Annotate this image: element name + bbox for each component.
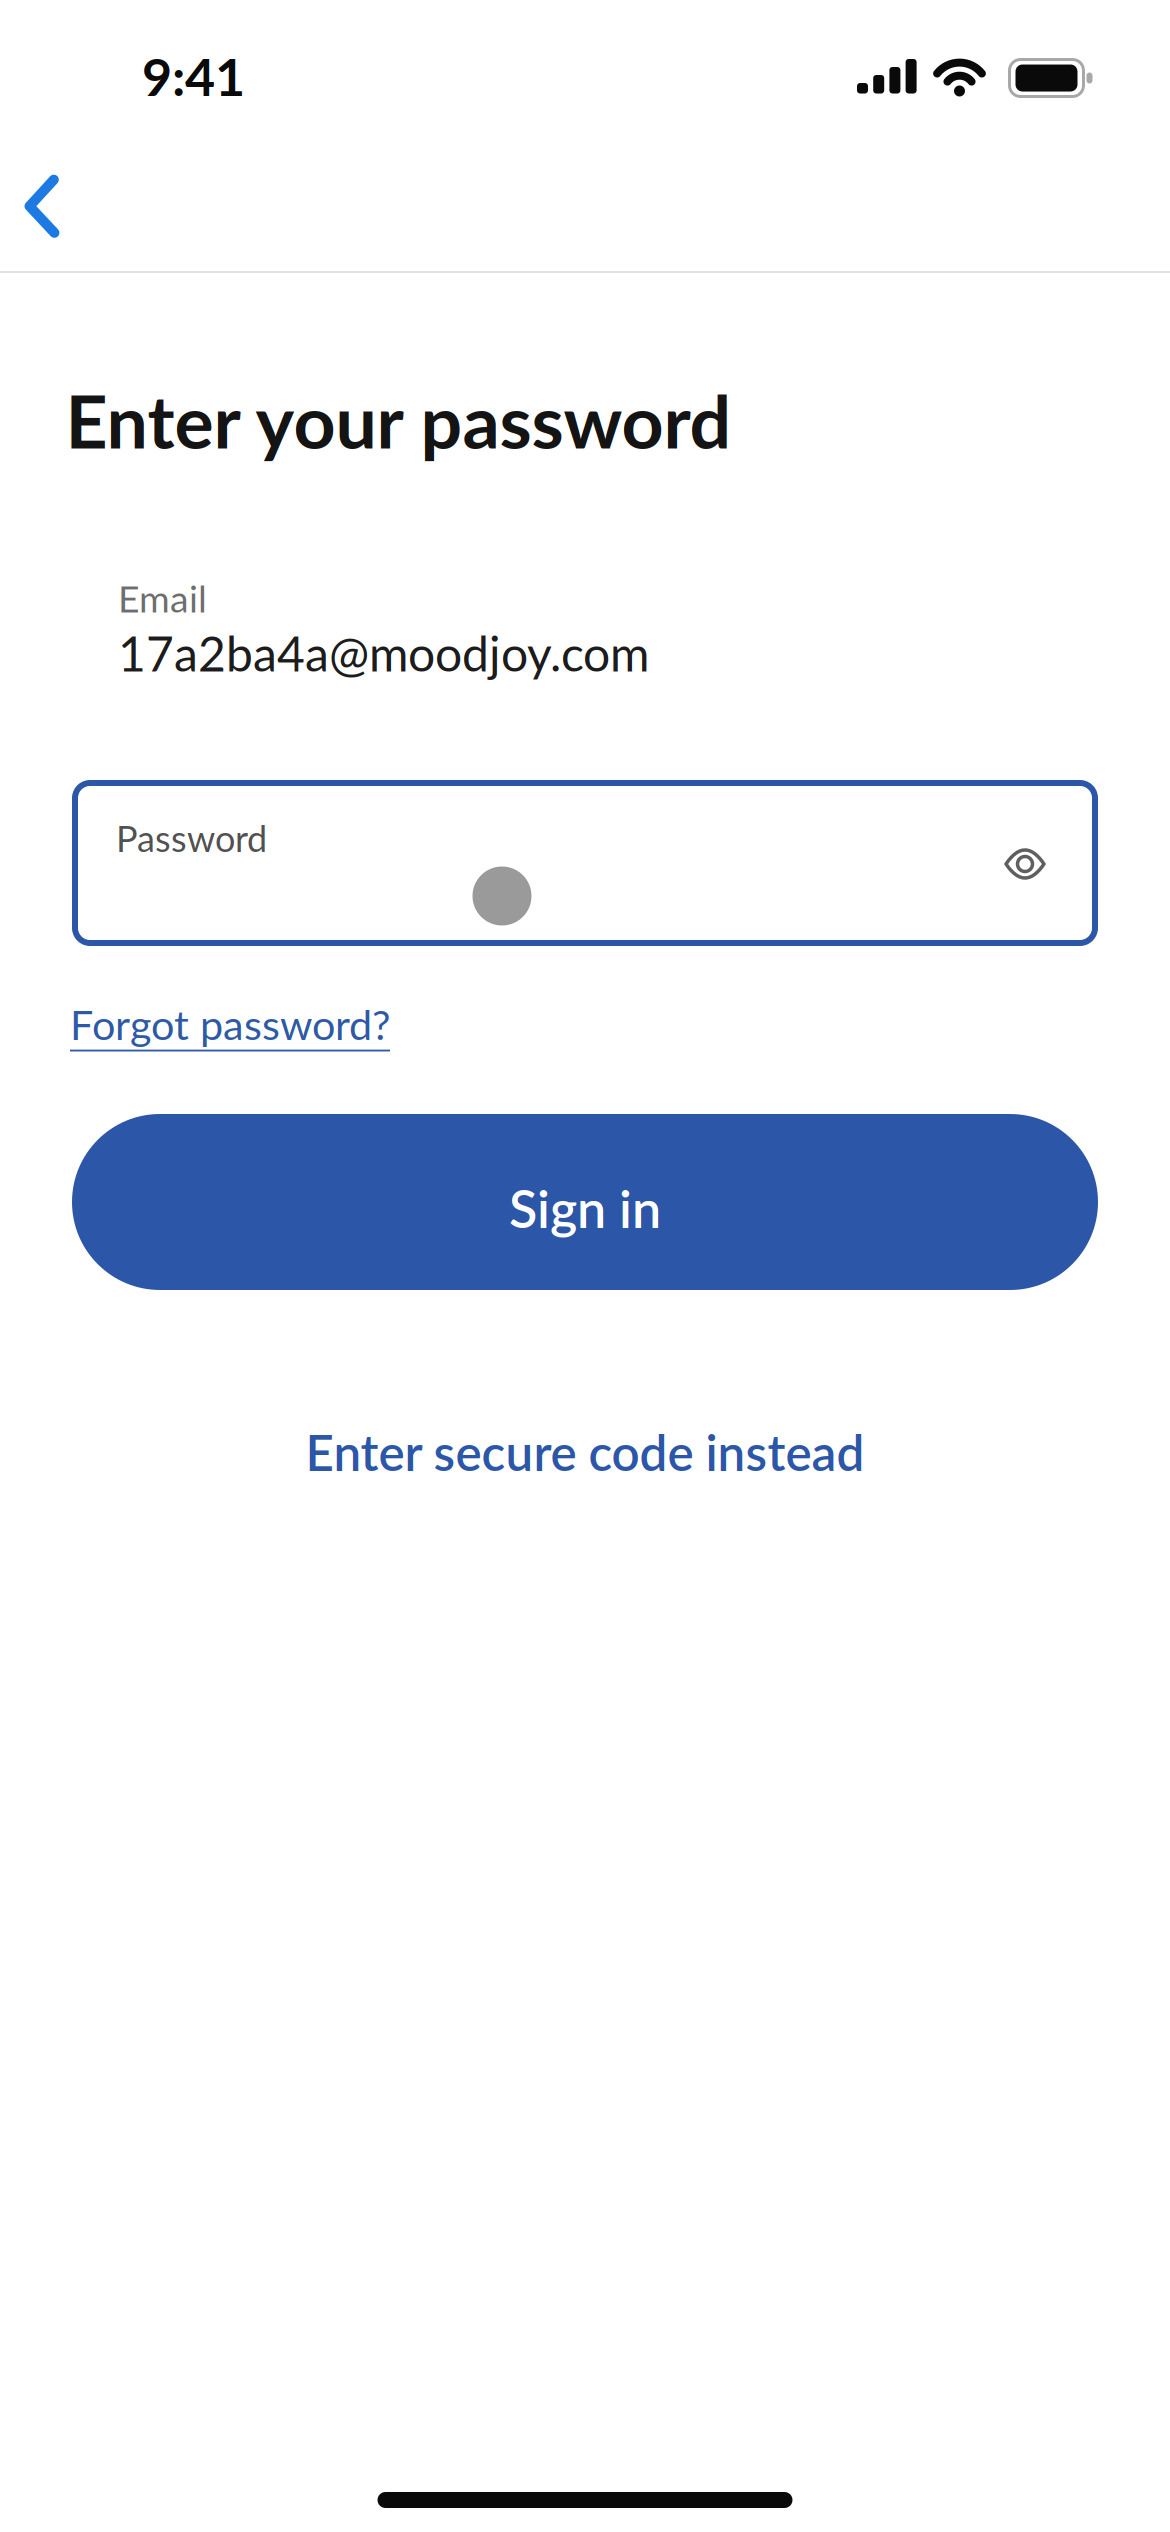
staticText: 9:41 (142, 45, 245, 107)
staticText: 17a2ba4a@moodjoy.com (118, 624, 649, 682)
staticText: Enter secure code instead (305, 1422, 864, 1482)
button[interactable] (995, 834, 1055, 894)
staticText: Sign in (509, 1177, 661, 1239)
staticText: Email (118, 576, 207, 620)
staticText: Enter your password (65, 376, 731, 464)
staticText: Password (116, 816, 267, 860)
button[interactable] (8, 166, 78, 246)
button[interactable]: Sign in (72, 1114, 1098, 1290)
button[interactable]: Enter secure code instead (305, 1422, 864, 1482)
button[interactable]: Forgot password? (70, 999, 570, 1049)
button[interactable] (72, 780, 1098, 946)
staticText: Forgot password? (70, 999, 390, 1049)
